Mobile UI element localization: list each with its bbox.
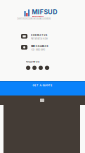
button[interactable]: Facebook bbox=[26, 66, 30, 70]
staticText: Parramatta NSW bbox=[31, 37, 48, 40]
button[interactable]: Google Plus bbox=[45, 66, 49, 70]
button[interactable]: LinkedIn bbox=[39, 66, 43, 70]
staticText: GET A QUOTE bbox=[32, 84, 52, 87]
button[interactable]: FREE CALLBACK bbox=[21, 45, 55, 51]
button[interactable]: Twitter bbox=[32, 66, 37, 70]
staticText: CONTACT US bbox=[31, 34, 47, 37]
staticText: MIFSUD bbox=[32, 8, 58, 16]
staticText: CHARTERED ACCOUNTANTS · BUSINESS ADVISOR… bbox=[17, 18, 51, 20]
staticText: (02) 9683 6843 bbox=[31, 48, 45, 51]
button[interactable]: GET A QUOTE bbox=[0, 81, 85, 95]
button[interactable]: CONTACT US bbox=[21, 34, 55, 40]
staticText: AND ASSOCIATES bbox=[32, 16, 44, 17]
staticText: FOLLOW US bbox=[26, 60, 39, 63]
staticText: FREE CALLBACK bbox=[31, 45, 49, 48]
